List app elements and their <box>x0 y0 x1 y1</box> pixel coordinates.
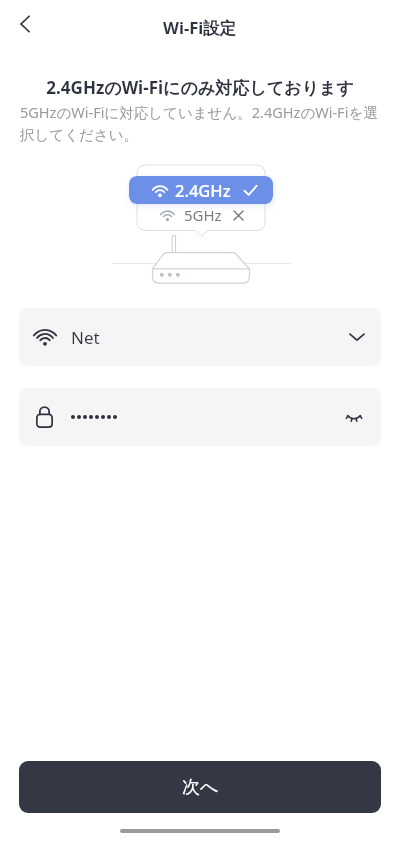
staticText: Net <box>71 326 100 349</box>
button[interactable]: Net <box>19 308 381 366</box>
staticText: Wi-Fi設定 <box>163 16 237 39</box>
button[interactable]: 次へ <box>19 761 381 813</box>
staticText: 2.4GHz <box>175 179 231 201</box>
button[interactable]: 2.4GHz <box>129 176 273 204</box>
button[interactable]: 5GHz <box>160 204 243 226</box>
staticText: 次へ <box>182 776 219 799</box>
button[interactable]: Back <box>3 2 47 46</box>
staticText: 5GHz <box>184 205 222 225</box>
staticText: 2.4GHzのWi-Fiにのみ対応しております <box>16 76 384 99</box>
button[interactable]: Show password <box>19 388 381 446</box>
button[interactable]: Show password <box>343 406 365 428</box>
staticText: 5GHzのWi-Fiに対応していません。2.4GHzのWi-Fiを選択してくださ… <box>20 102 384 144</box>
